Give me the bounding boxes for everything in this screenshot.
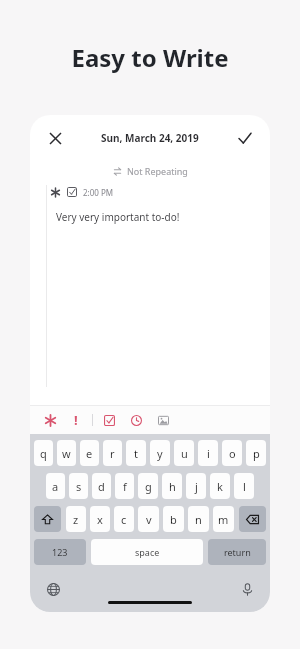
button[interactable]: h (162, 473, 182, 499)
staticText: n (195, 512, 202, 527)
staticText: k (217, 479, 223, 494)
button[interactable]: c (114, 506, 134, 532)
staticText: g (145, 479, 152, 494)
button[interactable]: Shift (34, 506, 61, 532)
button[interactable]: e (80, 440, 99, 466)
button[interactable]: Dictate (236, 578, 258, 600)
button[interactable]: Backspace (239, 506, 266, 532)
staticText: j (195, 479, 198, 494)
button[interactable]: v (138, 506, 159, 532)
staticText: 123 (52, 546, 68, 558)
button[interactable]: q (34, 440, 53, 466)
button[interactable]: space (91, 539, 203, 565)
button[interactable]: i (198, 440, 218, 466)
button[interactable]: m (213, 506, 234, 532)
button[interactable]: s (69, 473, 88, 499)
staticText: v (146, 512, 152, 527)
staticText: o (229, 446, 236, 461)
button[interactable]: k (210, 473, 230, 499)
button[interactable]: Attach image (153, 410, 173, 430)
button[interactable]: Not Repeating (30, 161, 270, 181)
button[interactable]: j (186, 473, 206, 499)
staticText: s (76, 479, 82, 494)
button[interactable]: Close (42, 125, 68, 151)
staticText: u (181, 446, 188, 461)
staticText: e (86, 446, 93, 461)
staticText: w (62, 446, 71, 461)
button[interactable]: u (174, 440, 194, 466)
staticText: l (243, 479, 246, 494)
button[interactable]: return (208, 539, 266, 565)
staticText: Sun, March 24, 2019 (101, 131, 199, 145)
button[interactable]: Reminder time (126, 410, 146, 430)
staticText: r (110, 446, 115, 461)
staticText: i (207, 446, 210, 461)
staticText: f (123, 479, 127, 494)
staticText: x (97, 512, 103, 527)
button[interactable]: p (246, 440, 266, 466)
button[interactable]: b (163, 506, 184, 532)
button[interactable]: z (66, 506, 86, 532)
staticText: Not Repeating (127, 165, 188, 177)
staticText: h (169, 479, 176, 494)
staticText: space (135, 546, 160, 558)
button[interactable]: Priority (66, 410, 86, 430)
button[interactable]: n (188, 506, 209, 532)
staticText: return (224, 546, 251, 558)
staticText: m (218, 512, 229, 527)
button[interactable]: g (138, 473, 158, 499)
button[interactable]: a (46, 473, 65, 499)
staticText: 2:00 PM (83, 187, 114, 198)
staticText: p (253, 446, 260, 461)
staticText: a (52, 479, 59, 494)
button[interactable]: Important (40, 410, 60, 430)
button[interactable]: r (103, 440, 122, 466)
button[interactable]: 123 (34, 539, 86, 565)
button[interactable]: o (222, 440, 242, 466)
button[interactable]: Save (232, 125, 258, 151)
staticText: d (98, 479, 105, 494)
button[interactable]: d (92, 473, 111, 499)
staticText: t (134, 446, 138, 461)
button[interactable]: Change keyboard (42, 578, 64, 600)
staticText: c (121, 512, 127, 527)
staticText: Easy to Write (0, 41, 300, 74)
staticText: q (40, 446, 47, 461)
staticText: Very very important to-do! (56, 210, 180, 224)
button[interactable]: Checklist (99, 410, 119, 430)
button[interactable]: f (115, 473, 134, 499)
button[interactable]: x (90, 506, 110, 532)
staticText: z (73, 512, 79, 527)
staticText: y (157, 446, 163, 461)
staticText: b (170, 512, 177, 527)
staticText: ! (74, 411, 78, 429)
button[interactable]: w (57, 440, 76, 466)
button[interactable]: t (126, 440, 146, 466)
button[interactable]: l (234, 473, 254, 499)
button[interactable]: y (150, 440, 170, 466)
